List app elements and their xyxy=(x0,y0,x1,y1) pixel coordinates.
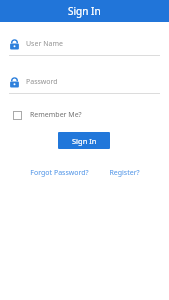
staticText: Sign In xyxy=(72,136,97,146)
button[interactable]: Sign In xyxy=(58,132,110,149)
button[interactable]: Remember Me? xyxy=(13,110,82,120)
button[interactable]: Register? xyxy=(107,166,142,180)
staticText: Sign In xyxy=(68,4,101,18)
button[interactable]: Forgot Password? xyxy=(28,166,91,180)
button[interactable]: Password xyxy=(9,74,160,90)
staticText: Remember Me? xyxy=(30,110,82,120)
staticText: Forgot Password? xyxy=(30,168,89,178)
staticText: Password xyxy=(26,77,58,87)
staticText: User Name xyxy=(26,39,63,49)
other: User Name xyxy=(9,39,20,50)
staticText: Register? xyxy=(109,168,140,178)
button[interactable]: User Name xyxy=(9,36,160,52)
other: Password xyxy=(9,77,20,88)
